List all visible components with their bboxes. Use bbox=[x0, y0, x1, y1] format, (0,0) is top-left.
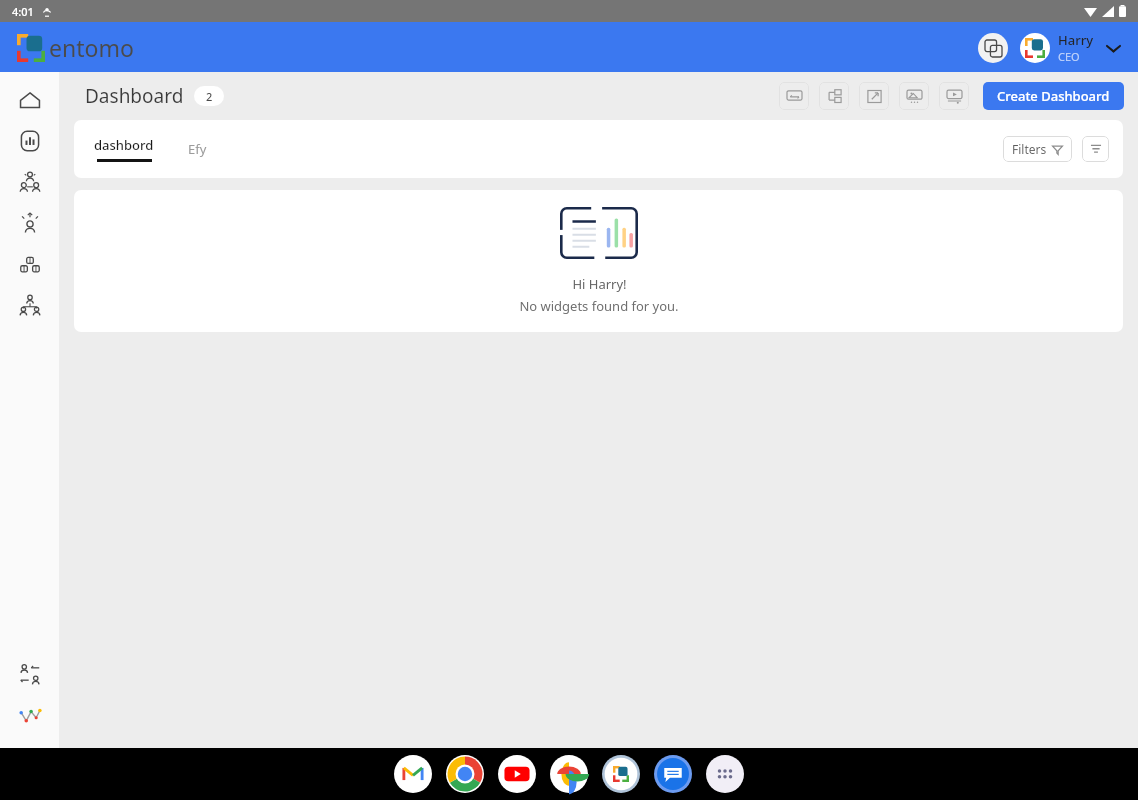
button[interactable]: Messages bbox=[654, 755, 692, 793]
button[interactable]: Translate bbox=[978, 33, 1008, 63]
staticText: Hi Harry! bbox=[572, 275, 627, 293]
button[interactable]: entomo bbox=[602, 755, 640, 793]
button[interactable]: Teams bbox=[0, 168, 59, 196]
staticText: Dashboard bbox=[85, 83, 184, 109]
staticText: No widgets found for you. bbox=[519, 297, 679, 315]
button[interactable]: Gmail bbox=[394, 755, 432, 793]
button[interactable]: Swap layout bbox=[779, 82, 809, 110]
button[interactable]: Goals bbox=[0, 209, 59, 237]
button[interactable]: Photos bbox=[550, 755, 588, 793]
staticText: Harry bbox=[1058, 31, 1094, 49]
button[interactable]: Sort bbox=[1082, 136, 1109, 162]
staticText: Create Dashboard bbox=[997, 87, 1110, 105]
staticText: Filters bbox=[1012, 141, 1047, 157]
button[interactable]: Slideshow bbox=[939, 82, 969, 110]
button[interactable]: Account menu bbox=[1102, 37, 1124, 59]
button[interactable]: Home bbox=[0, 86, 59, 114]
button[interactable]: All apps bbox=[706, 755, 744, 793]
button[interactable]: Arrange widgets bbox=[819, 82, 849, 110]
staticText: 2 bbox=[206, 89, 213, 104]
staticText: CEO bbox=[1058, 49, 1080, 64]
button[interactable]: Insights bbox=[0, 702, 59, 730]
button[interactable]: dashbord bbox=[88, 132, 160, 166]
button[interactable]: YouTube bbox=[498, 755, 536, 793]
button[interactable]: Filters bbox=[1003, 136, 1072, 162]
button[interactable]: Presentation bbox=[899, 82, 929, 110]
button[interactable]: Modules bbox=[0, 250, 59, 278]
button[interactable]: Create Dashboard bbox=[983, 82, 1124, 110]
button[interactable]: Chrome bbox=[446, 755, 484, 793]
button[interactable]: Open in new tab bbox=[859, 82, 889, 110]
button[interactable]: Efy bbox=[182, 136, 213, 162]
button[interactable]: Org chart bbox=[0, 291, 59, 319]
staticText: 4:01 bbox=[12, 4, 34, 19]
button[interactable]: Transfers bbox=[0, 660, 59, 688]
staticText: entomo bbox=[49, 32, 134, 63]
staticText: dashbord bbox=[94, 136, 154, 154]
staticText: Efy bbox=[188, 140, 207, 158]
button[interactable]: Analytics bbox=[0, 127, 59, 155]
